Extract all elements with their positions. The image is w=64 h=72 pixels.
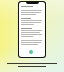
button[interactable]: Add xyxy=(29,50,33,54)
